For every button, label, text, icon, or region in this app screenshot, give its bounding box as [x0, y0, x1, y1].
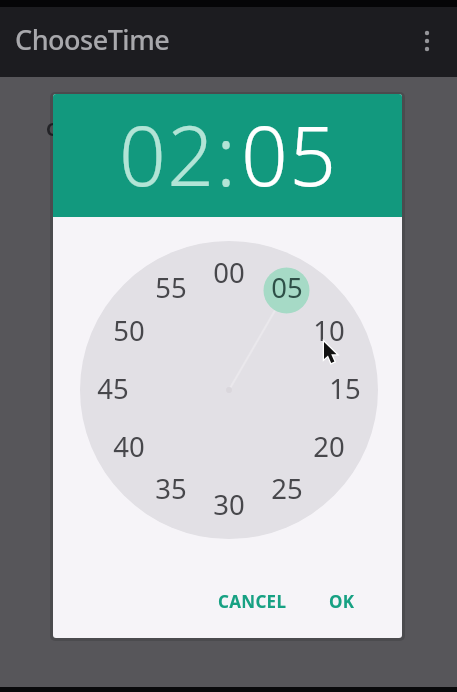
button[interactable]: 00	[205, 248, 253, 296]
staticText: 35	[155, 470, 187, 507]
staticText: OK	[329, 590, 355, 613]
button[interactable]: 15	[321, 364, 369, 412]
staticText: 50	[113, 312, 145, 349]
staticText: C	[46, 117, 58, 142]
button[interactable]: OK	[315, 580, 369, 623]
button[interactable]: 25	[263, 464, 311, 512]
staticText: 00	[213, 254, 245, 291]
button[interactable]: CANCEL	[204, 580, 301, 623]
staticText: 10	[313, 312, 345, 349]
staticText: 40	[113, 428, 145, 465]
button[interactable]: 30	[205, 480, 253, 528]
staticText: CANCEL	[218, 590, 287, 613]
button[interactable]: 55	[147, 263, 195, 311]
button[interactable]: 35	[147, 464, 195, 512]
staticText: 15	[329, 370, 361, 407]
button[interactable]: 02	[119, 98, 216, 210]
button[interactable]: 45	[89, 364, 137, 412]
button[interactable]: 40	[105, 422, 153, 470]
staticText: 30	[213, 486, 245, 523]
staticText: 05	[271, 269, 303, 306]
staticText: :	[216, 98, 237, 210]
button[interactable]: 50	[105, 306, 153, 354]
button[interactable]: 05	[241, 98, 338, 210]
button[interactable]: 05	[263, 263, 311, 311]
staticText: 45	[97, 370, 129, 407]
button[interactable]: 10	[305, 306, 353, 354]
staticText: 55	[155, 269, 187, 306]
staticText: 25	[271, 470, 303, 507]
staticText: ChooseTime	[15, 21, 170, 58]
staticText: 20	[313, 428, 345, 465]
button[interactable]	[409, 18, 457, 66]
button[interactable]: 20	[305, 422, 353, 470]
